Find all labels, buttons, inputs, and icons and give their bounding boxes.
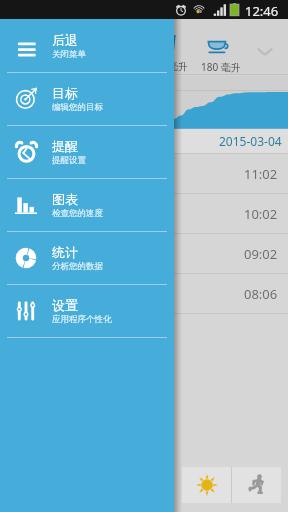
staticText: 12:46 — [245, 2, 279, 20]
button[interactable]: 后退 — [0, 20, 174, 72]
staticText: 检查您的速度 — [52, 208, 103, 219]
button[interactable]: Day mode — [182, 467, 231, 503]
button[interactable]: 提醒 — [0, 126, 174, 178]
staticText: 编辑您的目标 — [52, 102, 103, 113]
button[interactable]: 11:02 — [0, 154, 288, 193]
button[interactable]: Expand — [253, 39, 277, 63]
staticText: 毫升 — [168, 60, 188, 73]
button[interactable]: 目标 — [0, 73, 174, 125]
staticText: 图表 — [52, 191, 78, 207]
staticText: 统计 — [52, 244, 78, 260]
staticText: 180 毫升 — [201, 60, 241, 74]
button[interactable]: 统计 — [0, 232, 174, 284]
staticText: 分析您的数据 — [52, 261, 103, 272]
staticText: 应用程序个性化 — [52, 314, 112, 325]
staticText: 08:06 — [244, 285, 278, 303]
staticText: 09:02 — [244, 245, 278, 263]
staticText: 提醒设置 — [52, 155, 86, 166]
button[interactable]: 图表 — [0, 179, 174, 231]
button[interactable]: Activity — [232, 467, 281, 503]
staticText: 11:02 — [244, 165, 278, 183]
staticText: 目标 — [52, 85, 78, 101]
button[interactable]: 08:06 — [0, 274, 288, 313]
staticText: 后退 — [52, 32, 78, 48]
staticText: 提醒 — [52, 138, 78, 154]
staticText: 设置 — [52, 297, 78, 313]
button[interactable]: 09:02 — [0, 234, 288, 273]
staticText: 2015-03-04 — [219, 133, 282, 149]
button[interactable]: 设置 — [0, 285, 174, 337]
button[interactable]: 10:02 — [0, 194, 288, 233]
staticText: 关闭菜单 — [52, 49, 86, 60]
staticText: 10:02 — [244, 205, 278, 223]
